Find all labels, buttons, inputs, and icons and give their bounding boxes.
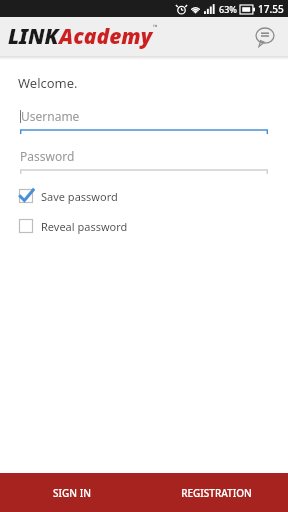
- button[interactable]: REGISTRATION: [144, 473, 288, 512]
- button[interactable]: Reveal password: [18, 218, 270, 234]
- button[interactable]: Username: [20, 108, 268, 134]
- staticText: 17.55: [258, 2, 284, 16]
- staticText: Save password: [41, 189, 118, 204]
- staticText: 63%: [219, 3, 237, 15]
- staticText: Password: [20, 148, 75, 164]
- staticText: REGISTRATION: [181, 486, 252, 500]
- staticText: SIGN IN: [53, 486, 91, 500]
- button[interactable]: Save password: [18, 188, 270, 204]
- staticText: Username: [21, 108, 80, 124]
- staticText: Academy: [59, 22, 153, 51]
- staticText: ™: [153, 23, 158, 31]
- staticText: LINK: [8, 22, 59, 51]
- staticText: Welcome.: [18, 74, 78, 92]
- button[interactable]: Messages: [248, 20, 282, 54]
- staticText: Reveal password: [41, 219, 128, 234]
- button[interactable]: Password: [20, 148, 268, 174]
- button[interactable]: SIGN IN: [0, 473, 144, 512]
